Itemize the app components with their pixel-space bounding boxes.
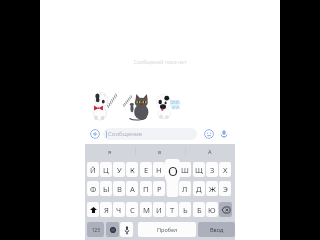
staticText: И — [156, 205, 162, 215]
button[interactable]: Ы — [100, 181, 112, 196]
button[interactable]: Г — [166, 162, 178, 177]
button[interactable]: Ю — [206, 202, 218, 217]
staticText: Б — [197, 205, 202, 215]
button[interactable]: А — [126, 181, 138, 196]
button[interactable]: Пробел — [138, 222, 196, 237]
staticText: Щ — [195, 165, 203, 175]
staticText: Х — [223, 165, 228, 175]
button[interactable]: Ц — [100, 162, 112, 177]
button[interactable]: А — [185, 144, 235, 159]
button[interactable]: Й — [87, 162, 99, 177]
staticText: Э — [223, 184, 228, 194]
staticText: Сообщений пока нет — [85, 58, 235, 65]
button[interactable]: Ж — [206, 181, 218, 196]
staticText: Т — [170, 205, 175, 215]
staticText: З — [210, 165, 215, 175]
button[interactable]: Emoji — [204, 129, 214, 139]
staticText: Р — [157, 184, 162, 194]
staticText: О — [168, 162, 178, 180]
staticText: Ц — [103, 165, 109, 175]
staticText: в — [158, 148, 162, 155]
button[interactable]: С — [126, 202, 138, 217]
button[interactable]: Э — [219, 181, 231, 196]
button[interactable]: Л — [179, 181, 191, 196]
button[interactable]: Ш — [179, 162, 191, 177]
button[interactable]: Сообщение — [103, 128, 197, 140]
button[interactable]: Dictation — [120, 222, 133, 237]
button[interactable]: в — [135, 144, 185, 159]
staticText: Н — [156, 165, 162, 175]
button[interactable]: Ф — [87, 181, 99, 196]
button[interactable]: М — [140, 202, 152, 217]
button[interactable]: Voice message — [219, 129, 229, 139]
staticText: Г — [170, 165, 174, 175]
staticText: У — [117, 165, 122, 175]
button[interactable]: я — [85, 144, 135, 159]
button[interactable]: Change language — [106, 222, 119, 237]
staticText: Ф — [90, 184, 97, 194]
staticText: С — [130, 205, 135, 215]
button[interactable]: П — [140, 181, 152, 196]
button[interactable]: Backspace — [219, 202, 232, 217]
staticText: Д — [196, 184, 202, 194]
staticText: К — [130, 165, 135, 175]
staticText: М — [143, 205, 150, 215]
button[interactable]: Б — [193, 202, 205, 217]
staticText: А — [130, 184, 135, 194]
button[interactable]: К — [126, 162, 138, 177]
staticText: Е — [144, 165, 149, 175]
staticText: Ю — [208, 205, 216, 215]
staticText: Й — [90, 165, 96, 175]
button[interactable]: Т — [166, 202, 178, 217]
staticText: В — [117, 184, 122, 194]
button[interactable]: В — [113, 181, 125, 196]
button[interactable]: У — [113, 162, 125, 177]
button[interactable]: Ввод — [198, 222, 235, 237]
button[interactable]: И — [153, 202, 165, 217]
button[interactable]: Ь — [179, 202, 191, 217]
staticText: Ш — [181, 165, 189, 175]
button[interactable]: Я — [100, 202, 112, 217]
button[interactable]: Щ — [193, 162, 205, 177]
staticText: Ч — [116, 205, 122, 215]
staticText: П — [143, 184, 149, 194]
staticText: я — [108, 148, 112, 155]
staticText: Ввод — [210, 226, 224, 233]
button[interactable]: Р — [153, 181, 165, 196]
staticText: Сообщение — [108, 130, 142, 138]
button[interactable]: Н — [153, 162, 165, 177]
staticText: 123 — [92, 227, 100, 233]
button[interactable]: З — [206, 162, 218, 177]
staticText: Пробел — [157, 226, 178, 233]
button[interactable]: Ч — [113, 202, 125, 217]
button[interactable]: Х — [219, 162, 231, 177]
button[interactable]: Attach — [90, 129, 100, 139]
staticText: Ж — [209, 184, 216, 194]
staticText: Ы — [103, 184, 110, 194]
button[interactable]: Shift — [87, 202, 99, 217]
staticText: А — [208, 148, 212, 155]
staticText: Ь — [183, 205, 188, 215]
button[interactable]: 123 — [87, 222, 104, 237]
button[interactable]: Д — [193, 181, 205, 196]
staticText: Я — [104, 205, 109, 215]
button[interactable]: Е — [140, 162, 152, 177]
staticText: Л — [182, 184, 188, 194]
